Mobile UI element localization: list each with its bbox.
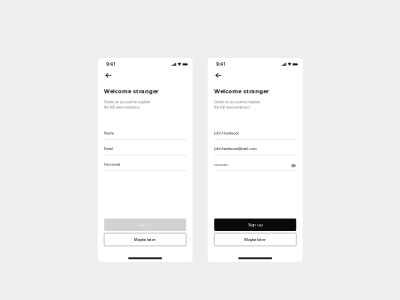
button[interactable]: Sign up [214,218,296,231]
staticText: Sign up [248,222,262,227]
staticText: Sign up [138,222,152,227]
staticText: Email [104,146,113,151]
staticText: Create an account to explore the full aw… [104,99,150,109]
staticText: Password [104,162,120,167]
staticText: john.hardwood@mail.com [214,146,256,151]
staticText: Welcome stranger [104,87,159,95]
button[interactable]: Back [104,71,113,79]
staticText: Name [104,130,114,136]
staticText: Maybe later [134,237,156,242]
staticText: John Hardwood [214,130,239,136]
button[interactable]: Back [214,71,223,79]
button[interactable]: Maybe later [214,233,296,246]
staticText: 9:41 [106,61,116,67]
button[interactable]: Maybe later [104,233,186,246]
button[interactable]: Sign up [104,218,186,231]
staticText: Welcome stranger [214,87,269,95]
staticText: Create an account to explore the full aw… [214,99,260,109]
staticText: 9:41 [216,61,226,67]
staticText: Maybe later [244,237,266,242]
